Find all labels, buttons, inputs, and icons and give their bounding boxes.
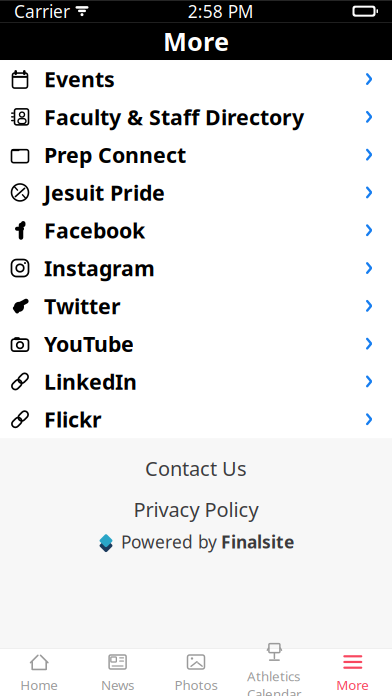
button[interactable]: Instagram <box>0 249 392 287</box>
button[interactable]: Contact Us <box>0 446 392 490</box>
button[interactable]: YouTube <box>0 325 392 363</box>
button[interactable]: Jesuit Pride <box>0 173 392 211</box>
button[interactable]: News <box>78 649 157 696</box>
staticText: Privacy Policy <box>133 496 258 522</box>
button[interactable]: Athletics Calendar <box>235 649 314 696</box>
staticText: Powered by <box>121 530 217 553</box>
staticText: 2:58 PM <box>188 0 254 23</box>
button[interactable]: Facebook <box>0 211 392 249</box>
staticText: Facebook <box>44 216 145 244</box>
button[interactable]: Photos <box>157 649 235 696</box>
staticText: Twitter <box>44 292 121 320</box>
staticText: Photos <box>174 676 217 694</box>
staticText: Faculty & Staff Directory <box>44 103 304 131</box>
staticText: News <box>101 676 134 694</box>
staticText: Finalsite <box>221 530 294 553</box>
button[interactable]: Faculty & Staff Directory <box>0 98 392 136</box>
button[interactable]: Home <box>0 649 78 696</box>
button[interactable]: Privacy Policy <box>0 490 392 528</box>
button[interactable]: More <box>314 649 392 696</box>
staticText: More <box>336 676 369 694</box>
button[interactable]: Prep Connect <box>0 136 392 173</box>
staticText: More <box>163 24 229 58</box>
staticText: Instagram <box>44 254 155 282</box>
staticText: Events <box>44 65 115 93</box>
staticText: LinkedIn <box>44 367 137 396</box>
staticText: Prep Connect <box>44 140 186 169</box>
button[interactable]: Flickr <box>0 400 392 438</box>
staticText: Contact Us <box>145 455 247 481</box>
staticText: Home <box>20 676 58 694</box>
staticText: Carrier <box>14 0 70 23</box>
staticText: YouTube <box>44 329 134 358</box>
button[interactable]: Events <box>0 60 392 98</box>
staticText: Athletics Calendar <box>247 667 302 696</box>
staticText: Jesuit Pride <box>44 178 165 207</box>
button[interactable]: LinkedIn <box>0 362 392 400</box>
button[interactable]: Twitter <box>0 287 392 325</box>
staticText: Flickr <box>44 405 102 433</box>
